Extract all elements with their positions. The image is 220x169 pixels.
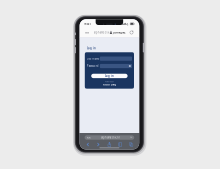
button[interactable]: AA [85, 135, 134, 140]
button[interactable]: Tabs [128, 142, 134, 147]
staticText: AA [85, 31, 89, 34]
button[interactable]: Back [85, 142, 90, 147]
staticText: 9:41 [84, 22, 91, 26]
staticText: Log in [87, 46, 96, 50]
button[interactable]: Reload [128, 29, 135, 35]
staticText: alphamedix.nl [101, 136, 120, 139]
staticText: Username [87, 57, 100, 60]
staticText: JOHNLINE [113, 31, 125, 34]
staticText: alphamedix [94, 31, 109, 34]
staticText: Password [87, 64, 99, 68]
staticText: ROUTINQ [103, 83, 116, 86]
button[interactable]: Forward [96, 142, 101, 147]
button[interactable]: Page settings [84, 29, 91, 35]
staticText: Log in [105, 74, 114, 78]
staticText: ⟳ [130, 136, 132, 139]
staticText: Powered by [105, 81, 114, 83]
button[interactable]: Bookmarks [117, 142, 123, 147]
button[interactable]: Share [107, 142, 112, 147]
button[interactable]: Log in [91, 74, 128, 78]
staticText: AA [87, 136, 91, 139]
